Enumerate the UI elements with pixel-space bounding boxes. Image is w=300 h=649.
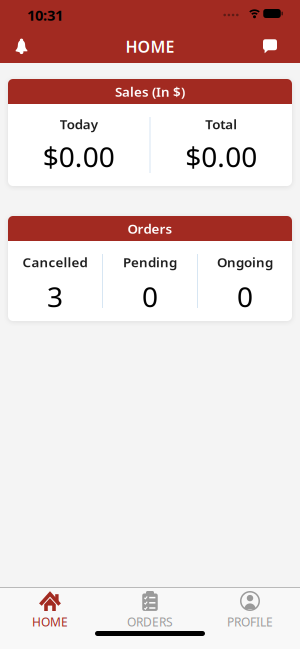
staticText: 0	[237, 278, 253, 315]
staticText: Sales (In $)	[115, 83, 185, 100]
staticText: $0.00	[185, 138, 257, 175]
button[interactable]: HOME	[0, 591, 100, 630]
staticText: Pending	[123, 253, 177, 271]
staticText: Orders	[127, 220, 172, 237]
staticText: Total	[205, 115, 237, 133]
staticText: 10:31	[27, 5, 63, 25]
button[interactable]: PROFILE	[200, 591, 300, 630]
staticText: Ongoing	[217, 253, 273, 271]
staticText: Today	[60, 115, 98, 133]
staticText: Cancelled	[22, 253, 87, 271]
staticText: PROFILE	[227, 614, 273, 630]
staticText: ORDERS	[127, 614, 173, 630]
staticText: 0	[142, 278, 158, 315]
staticText: 3	[47, 278, 63, 315]
staticText: $0.00	[43, 138, 115, 175]
button[interactable]: Messages	[263, 39, 277, 54]
staticText: HOME	[125, 36, 174, 57]
staticText: HOME	[32, 614, 68, 630]
button[interactable]: Notifications	[15, 38, 28, 55]
button[interactable]: ORDERS	[100, 591, 200, 630]
